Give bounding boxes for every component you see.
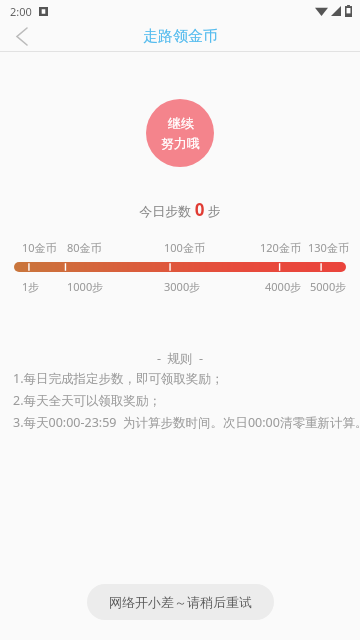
- button[interactable]: 网络开小差～请稍后重试: [87, 584, 274, 620]
- staticText: 1.每日完成指定步数，即可领取奖励；: [13, 370, 224, 387]
- staticText: 80金币: [67, 240, 102, 255]
- staticText: 2:00: [10, 4, 32, 19]
- staticText: 2.每天全天可以领取奖励；: [13, 392, 162, 409]
- staticText: 4000步: [265, 279, 302, 294]
- staticText: 3000步: [164, 279, 201, 294]
- staticText: 努力哦: [161, 135, 200, 151]
- staticText: 130金币: [308, 240, 349, 255]
- button[interactable]: 继续: [146, 99, 214, 167]
- staticText: - 规则 -: [157, 350, 204, 367]
- button[interactable]: Back: [0, 22, 44, 51]
- staticText: 10金币: [22, 240, 57, 255]
- staticText: 1000步: [67, 279, 104, 294]
- staticText: 今日步数 0 步: [139, 198, 221, 221]
- staticText: 网络开小差～请稍后重试: [109, 594, 252, 610]
- staticText: 走路领金币: [143, 27, 218, 46]
- staticText: 3.每天00:00-23:59 为计算步数时间。次日00:00清零重新计算。: [13, 414, 360, 431]
- staticText: 120金币: [260, 240, 301, 255]
- staticText: 5000步: [310, 279, 347, 294]
- staticText: 继续: [168, 115, 194, 131]
- staticText: 1步: [22, 279, 40, 294]
- staticText: 100金币: [164, 240, 205, 255]
